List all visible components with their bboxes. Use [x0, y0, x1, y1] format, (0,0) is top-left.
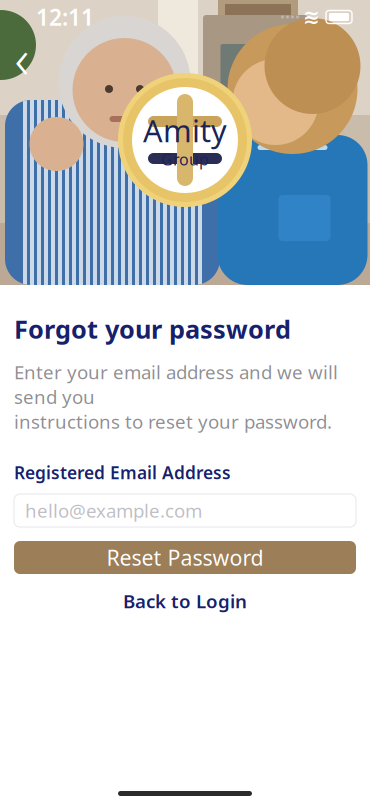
staticText: Group — [161, 149, 209, 170]
staticText: ‹ — [14, 20, 29, 94]
staticText: 12:11 — [36, 2, 94, 32]
staticText: Amity — [143, 110, 227, 151]
staticText: Reset Password — [106, 543, 263, 572]
staticText: Forgot your password — [14, 312, 291, 346]
button[interactable]: Back — [0, 38, 44, 76]
button[interactable]: Back to Login — [14, 586, 356, 616]
staticText: Enter your email address and we will sen… — [14, 360, 338, 434]
staticText: Registered Email Address — [14, 461, 231, 484]
staticText: hello@example.com — [25, 498, 202, 523]
staticText: ≋ — [303, 6, 320, 28]
staticText: Back to Login — [123, 589, 247, 613]
button[interactable]: Reset Password — [14, 541, 356, 574]
